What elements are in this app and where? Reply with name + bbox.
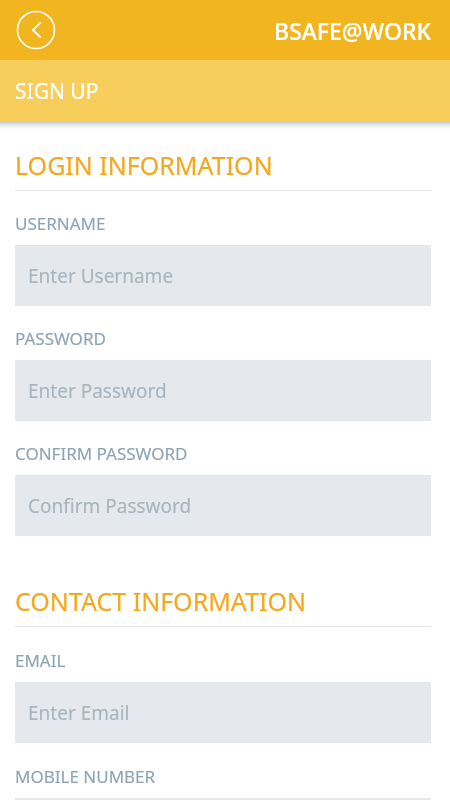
staticText: EMAIL xyxy=(15,649,66,672)
staticText: BSAFE@WORK xyxy=(63,15,431,46)
staticText: LOGIN INFORMATION xyxy=(15,148,273,182)
button[interactable]: Enter Username xyxy=(15,245,431,306)
button[interactable]: Enter Password xyxy=(15,360,431,421)
button[interactable]: Confirm Password xyxy=(15,475,431,536)
staticText: Confirm Password xyxy=(28,493,192,519)
button[interactable]: Enter Email xyxy=(15,682,431,743)
button[interactable]: Back xyxy=(10,4,62,56)
staticText: Enter Password xyxy=(28,378,167,404)
staticText: PASSWORD xyxy=(15,327,106,350)
staticText: Enter Username xyxy=(28,263,174,289)
staticText: CONFIRM PASSWORD xyxy=(15,442,188,465)
staticText: MOBILE NUMBER xyxy=(15,765,156,788)
staticText: SIGN UP xyxy=(15,77,99,106)
staticText: Enter Email xyxy=(28,700,130,726)
staticText: USERNAME xyxy=(15,212,106,235)
staticText: CONTACT INFORMATION xyxy=(15,584,306,618)
